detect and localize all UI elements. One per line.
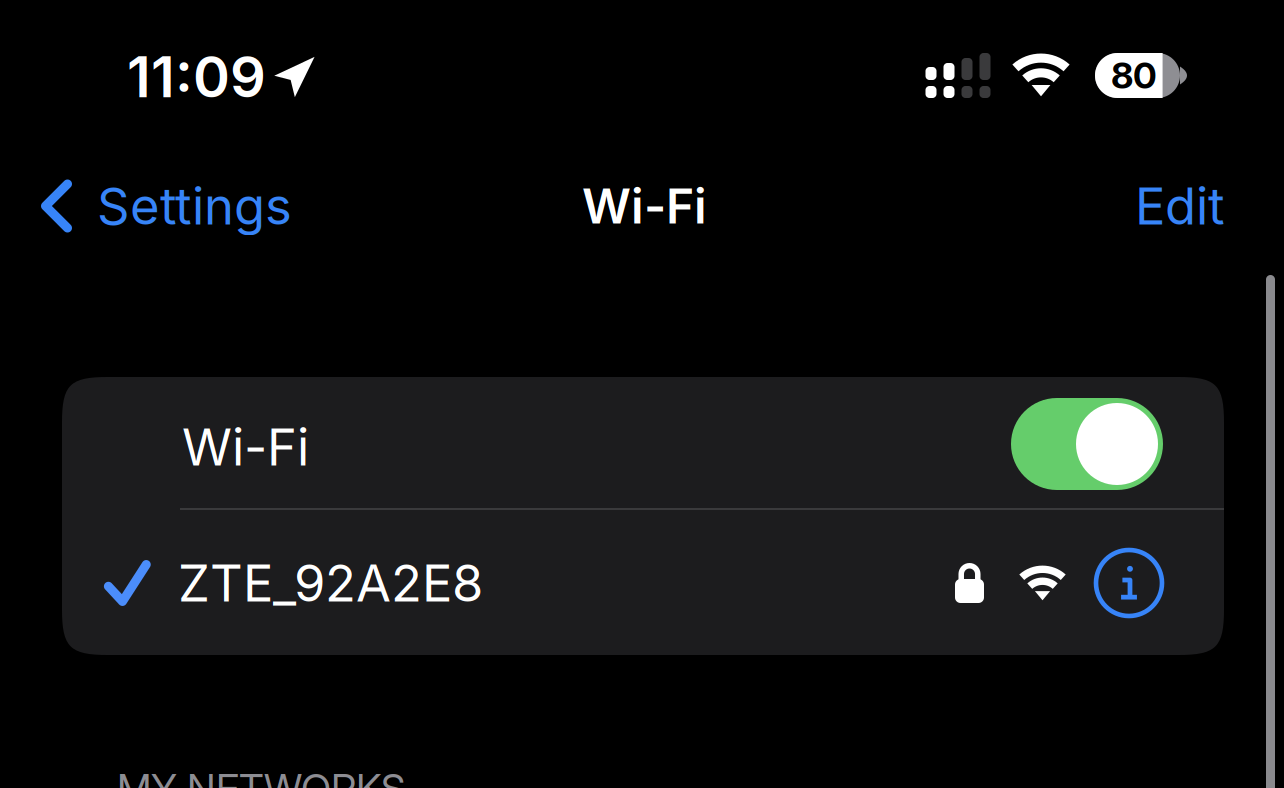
button[interactable]: Wi-Fi <box>62 376 1224 508</box>
staticText: 11:09 <box>127 43 266 111</box>
staticText: 80 <box>1111 54 1157 97</box>
staticText: Settings <box>97 175 292 237</box>
staticText: Wi-Fi <box>182 416 309 478</box>
staticText: MY NETWORKS <box>117 764 406 788</box>
staticText: Edit <box>1135 175 1225 237</box>
button[interactable]: Settings <box>0 160 330 252</box>
staticText: Wi-Fi <box>582 177 707 235</box>
button[interactable]: ZTE_92A2E8 <box>62 510 1224 656</box>
staticText: ZTE_92A2E8 <box>178 552 483 614</box>
button[interactable]: Edit <box>1044 160 1284 252</box>
